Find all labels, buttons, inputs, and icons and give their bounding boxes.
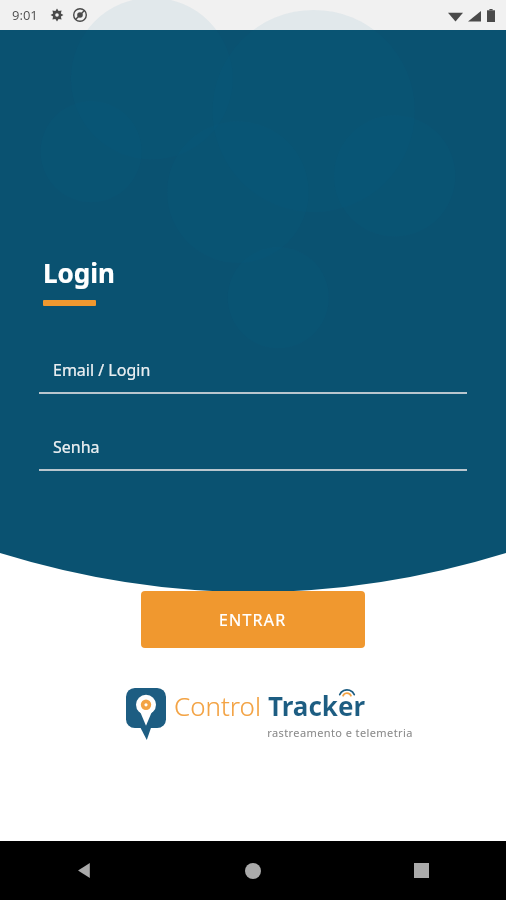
button[interactable]: Email / Login (39, 348, 467, 394)
button[interactable]: Recent apps (337, 841, 506, 900)
staticText: Login (43, 255, 115, 290)
button[interactable]: Senha (39, 425, 467, 471)
staticText: Tracker (268, 688, 366, 723)
staticText: ENTRAR (219, 609, 287, 631)
staticText: Senha (53, 436, 100, 458)
staticText: rastreamento e telemetria (174, 725, 506, 740)
staticText: Control (174, 688, 261, 723)
staticText: 9:01 (12, 6, 38, 24)
button[interactable]: Back (0, 841, 168, 900)
button[interactable]: Home (168, 841, 337, 900)
button[interactable]: ENTRAR (141, 591, 365, 648)
staticText: Email / Login (53, 359, 151, 381)
